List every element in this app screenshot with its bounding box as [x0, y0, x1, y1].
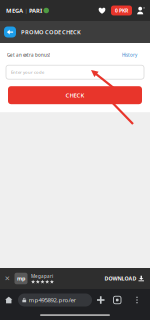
staticText: Get an extra bonus!: [7, 52, 50, 58]
button[interactable]: New tab: [92, 291, 109, 309]
button[interactable]: Close banner: [0, 269, 14, 288]
button[interactable]: History: [122, 52, 137, 58]
button[interactable]: Back: [0, 21, 21, 42]
staticText: mp: [17, 275, 25, 282]
button[interactable]: 0 PKR: [108, 5, 135, 15]
staticText: ✕: [4, 275, 10, 282]
staticText: CHECK: [65, 91, 84, 99]
staticText: PROMO CODE CHECK: [21, 28, 81, 36]
staticText: mp495892.pro/er: [28, 296, 75, 304]
button[interactable]: mp495892.pro/er: [18, 293, 92, 306]
staticText: History: [122, 52, 137, 58]
staticText: Enter your code: [11, 69, 44, 75]
staticText: 0 PKR: [115, 7, 128, 14]
button[interactable]: Tabs: [109, 291, 125, 309]
button[interactable]: CHECK: [8, 86, 142, 104]
button[interactable]: Home: [0, 291, 18, 309]
button[interactable]: Favourites: [96, 2, 108, 19]
button[interactable]: DOWNLOAD: [104, 269, 150, 288]
staticText: Megapari: [31, 273, 53, 279]
staticText: |: [24, 6, 27, 14]
button[interactable]: Account: [135, 1, 150, 19]
button[interactable]: Megapari home: [0, 1, 49, 19]
staticText: MEGA: [6, 6, 23, 14]
staticText: PARI: [29, 6, 42, 14]
staticText: DOWNLOAD: [104, 275, 136, 282]
button[interactable]: More options: [132, 292, 143, 308]
